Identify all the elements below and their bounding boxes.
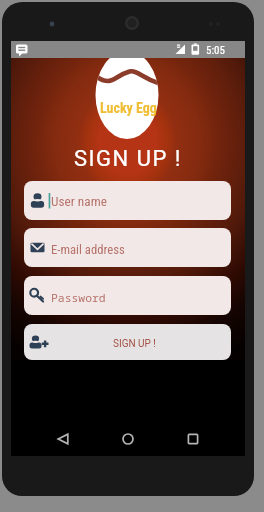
button[interactable]: User name — [24, 181, 231, 220]
staticText: 5:05 — [206, 44, 225, 57]
button[interactable]: Back — [50, 426, 75, 451]
button[interactable]: SIGN UP ! — [24, 324, 231, 360]
button[interactable]: Recent apps — [180, 426, 205, 451]
staticText: User name — [51, 194, 107, 210]
staticText: Lucky Egg — [100, 100, 157, 116]
button[interactable]: Home — [115, 426, 140, 451]
staticText: SIGN UP ! — [74, 146, 182, 172]
staticText: Password — [51, 290, 106, 306]
button[interactable]: Password — [24, 276, 231, 315]
button[interactable]: E-mail address — [24, 228, 231, 267]
staticText: SIGN UP ! — [113, 338, 156, 350]
staticText: E-mail address — [51, 242, 125, 257]
